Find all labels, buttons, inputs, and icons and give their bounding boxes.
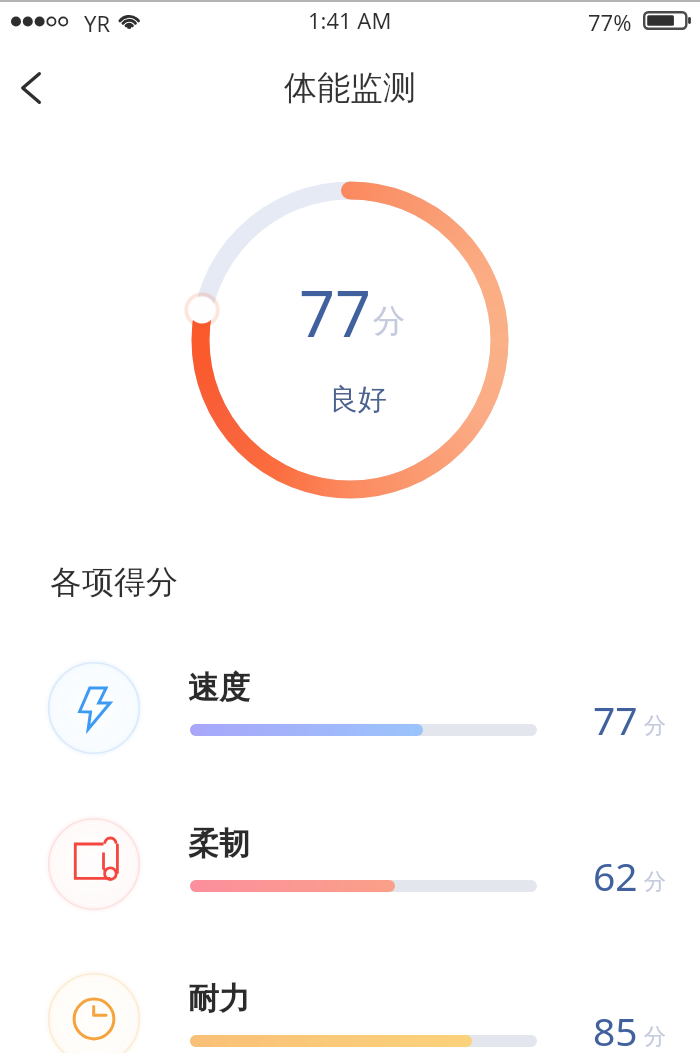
staticText: 分 xyxy=(644,712,666,740)
staticText: 分 xyxy=(644,1023,666,1051)
staticText: 速度 xyxy=(188,668,250,707)
staticText: 77% xyxy=(588,7,632,37)
staticText: 体能监测 xyxy=(284,67,416,109)
staticText: 分 xyxy=(644,868,666,896)
staticText: 85 xyxy=(593,1004,638,1053)
staticText: 77 xyxy=(593,693,638,746)
staticText: 柔韧 xyxy=(188,824,250,863)
button[interactable]: Back xyxy=(2,66,60,110)
staticText: YR xyxy=(84,8,111,38)
staticText: 77 xyxy=(299,270,372,356)
staticText: 62 xyxy=(593,849,638,902)
button[interactable]: 柔韧 xyxy=(0,808,700,926)
staticText: 良好 xyxy=(329,381,387,418)
staticText: 1:41 AM xyxy=(308,5,392,35)
staticText: 各项得分 xyxy=(50,562,178,602)
button[interactable]: 耐力 xyxy=(0,963,700,1053)
button[interactable]: 速度 xyxy=(0,652,700,770)
staticText: 耐力 xyxy=(188,979,250,1018)
staticText: 分 xyxy=(373,301,405,341)
